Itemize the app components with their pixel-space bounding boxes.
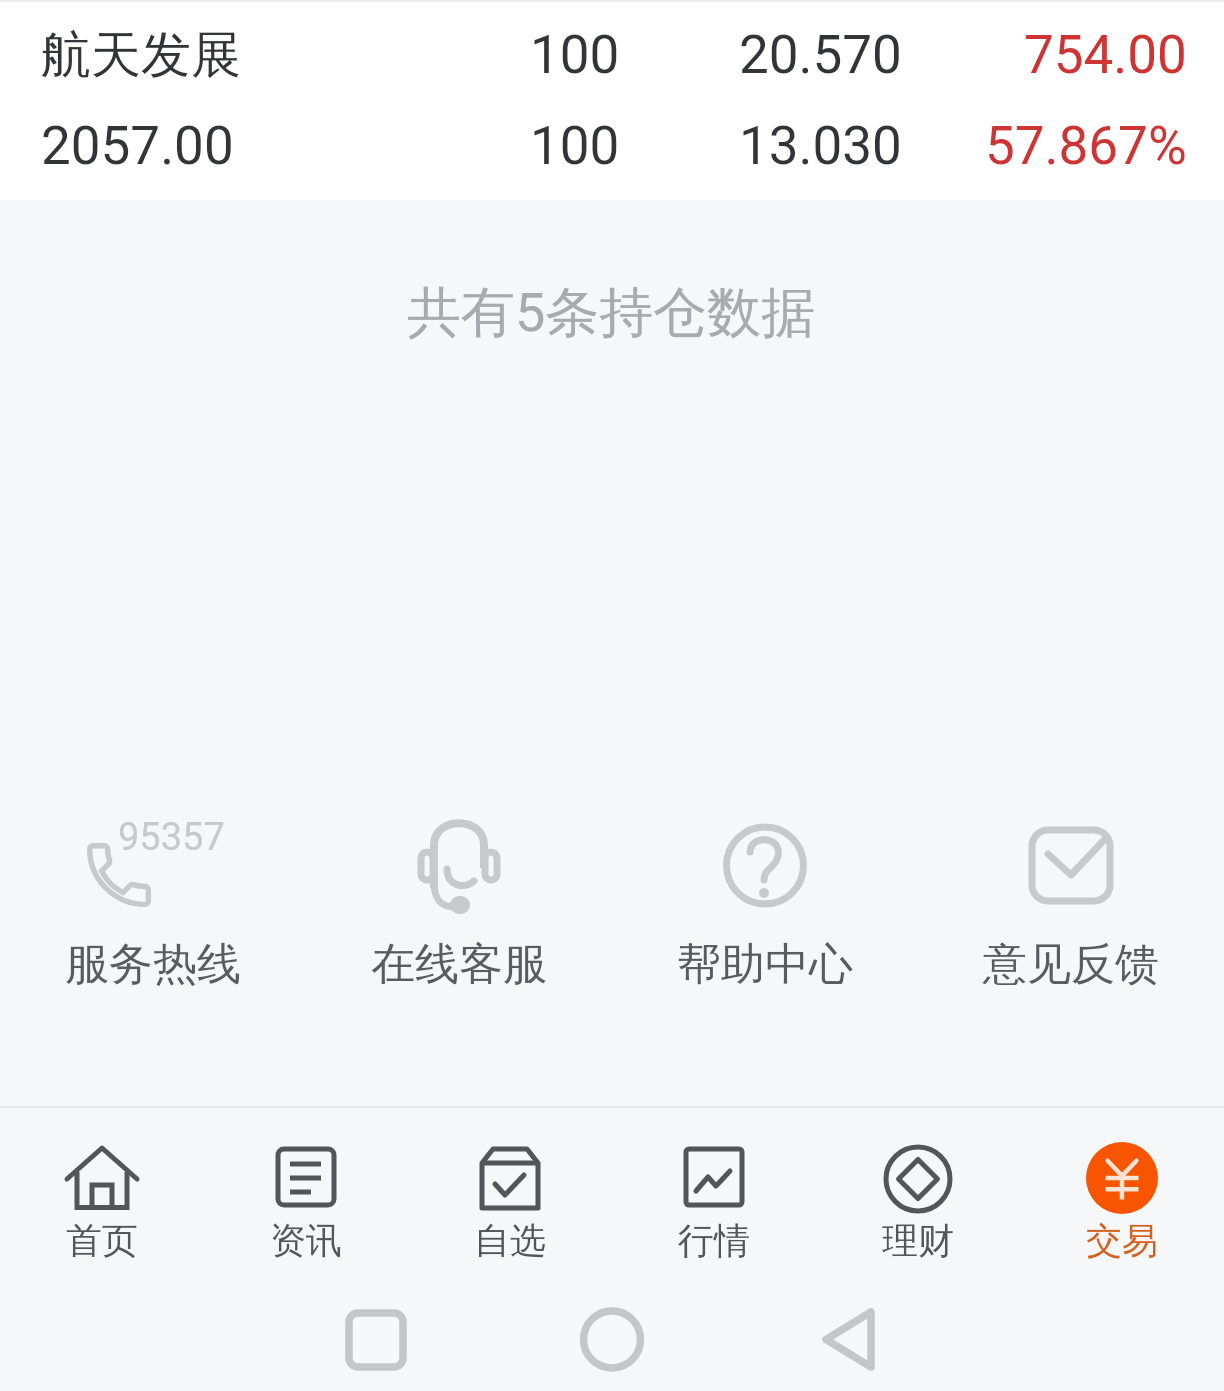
staticText: 意见反馈 bbox=[983, 937, 1159, 992]
button[interactable]: Trade bbox=[1020, 1108, 1224, 1283]
button[interactable] bbox=[612, 790, 918, 1020]
staticText: 95357 bbox=[118, 815, 225, 860]
staticText: 在线客服 bbox=[371, 937, 547, 992]
staticText: 100 bbox=[530, 24, 620, 86]
staticText: 100 bbox=[530, 115, 620, 177]
staticText: 首页 bbox=[66, 1218, 138, 1263]
staticText: 帮助中心 bbox=[677, 937, 853, 992]
button[interactable]: Wealth bbox=[816, 1108, 1020, 1283]
button[interactable]: Home bbox=[0, 1108, 204, 1283]
staticText: 航天发展 bbox=[41, 24, 241, 87]
button[interactable] bbox=[0, 790, 306, 1020]
button[interactable] bbox=[918, 790, 1224, 1020]
staticText: 资讯 bbox=[270, 1218, 342, 1263]
staticText: 13.030 bbox=[739, 115, 902, 177]
staticText: 2057.00 bbox=[41, 115, 234, 177]
button[interactable]: News bbox=[204, 1108, 408, 1283]
staticText: 57.867% bbox=[985, 115, 1187, 177]
staticText: 行情 bbox=[678, 1218, 750, 1263]
staticText: 共有5条持仓数据 bbox=[407, 279, 816, 347]
staticText: 理财 bbox=[882, 1218, 954, 1263]
button[interactable]: Market bbox=[612, 1108, 816, 1283]
staticText: 服务热线 bbox=[65, 937, 241, 992]
staticText: 754.00 bbox=[1024, 24, 1187, 86]
staticText: 自选 bbox=[474, 1218, 546, 1263]
button[interactable]: Watchlist bbox=[408, 1108, 612, 1283]
staticText: 交易 bbox=[1086, 1218, 1158, 1263]
button[interactable] bbox=[306, 790, 612, 1020]
staticText: 20.570 bbox=[739, 24, 902, 86]
